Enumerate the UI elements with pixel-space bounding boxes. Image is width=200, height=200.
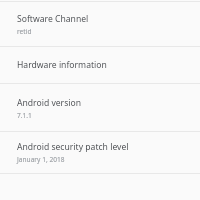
button[interactable]: Hardware information [0,47,200,83]
staticText: retid [17,27,32,36]
staticText: 7.1.1 [17,111,32,120]
staticText: Software Channel [17,13,89,25]
staticText: Hardware information [17,59,107,71]
staticText: Android security patch level [17,141,129,153]
button[interactable]: Android version [0,84,200,131]
button[interactable]: Software Channel [0,2,200,46]
button[interactable]: Android security patch level [0,132,200,173]
staticText: Android version [17,97,82,109]
staticText: January 1, 2018 [17,155,65,164]
